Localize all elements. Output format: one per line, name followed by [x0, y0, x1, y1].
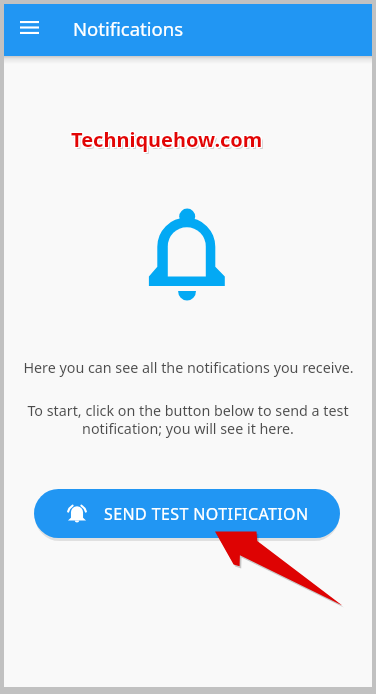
- staticText: Techniquehow.com: [73, 128, 265, 155]
- staticText: Techniquehow.com: [71, 127, 263, 154]
- staticText: Techniquehow.com: [70, 126, 262, 153]
- button[interactable]: SEND TEST NOTIFICATION: [34, 489, 340, 538]
- staticText: Techniquehow.com: [72, 127, 264, 154]
- button[interactable]: Open navigation menu: [7, 4, 51, 56]
- staticText: Techniquehow.com: [71, 125, 263, 152]
- staticText: Techniquehow.com: [72, 125, 264, 152]
- staticText: Notifications: [73, 16, 184, 41]
- staticText: Here you can see all the notifications y…: [23, 358, 354, 377]
- staticText: SEND TEST NOTIFICATION: [104, 503, 309, 525]
- staticText: Techniquehow.com: [72, 127, 264, 154]
- staticText: Techniquehow.com: [71, 126, 263, 153]
- staticText: Techniquehow.com: [70, 127, 262, 154]
- staticText: Techniquehow.com: [72, 126, 264, 153]
- staticText: Techniquehow.com: [70, 125, 262, 152]
- staticText: To start, click on the button below to s…: [27, 401, 349, 438]
